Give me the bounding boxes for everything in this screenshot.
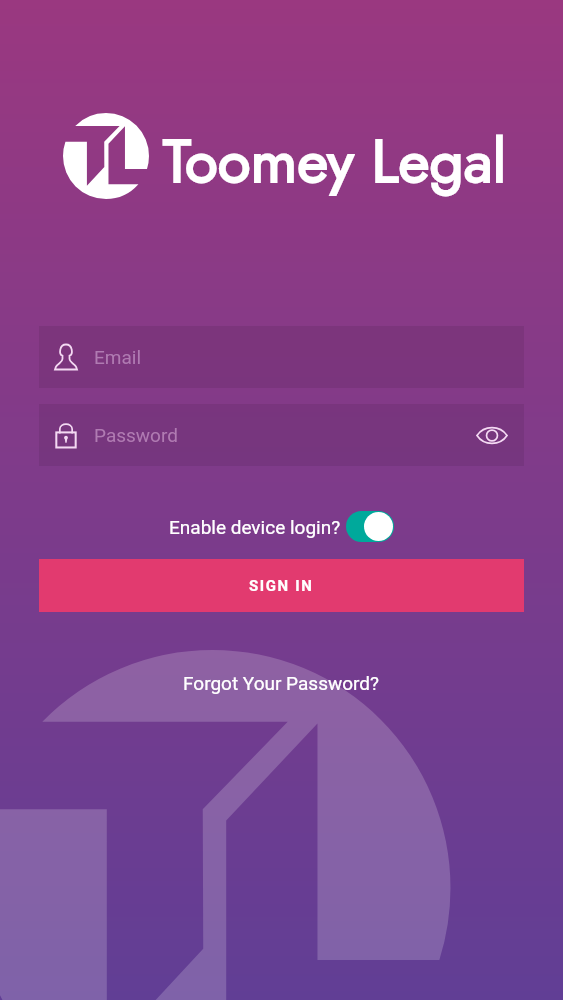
button[interactable]: SIGN IN — [39, 559, 524, 612]
staticText: Toomey Legal — [163, 118, 507, 205]
button[interactable]: Show password — [472, 415, 512, 455]
staticText: Email — [94, 346, 142, 368]
button[interactable]: Password — [39, 404, 524, 466]
staticText: Password — [94, 424, 472, 446]
button[interactable]: Email — [39, 326, 524, 388]
button[interactable]: Enable device login — [346, 511, 394, 542]
staticText: Enable device login? — [169, 516, 341, 538]
button[interactable]: Forgot Your Password? — [173, 668, 390, 698]
staticText: SIGN IN — [249, 577, 314, 595]
